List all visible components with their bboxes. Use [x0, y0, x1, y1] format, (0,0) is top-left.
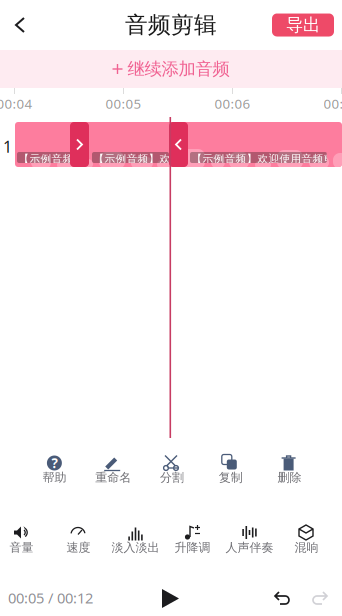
button[interactable]: 升降调 [164, 524, 221, 554]
staticText: 00:07 [323, 95, 342, 112]
button[interactable]: Redo [312, 591, 329, 606]
staticText: 00:04 [0, 95, 32, 112]
button[interactable]: Play [162, 589, 179, 608]
staticText: 【示例音频】欢迎使用音频剪辑 [18, 152, 172, 166]
staticText: 复制 [219, 470, 243, 485]
staticText: 音频剪辑 [125, 11, 217, 39]
staticText: 【示例音频】欢迎使用音频剪辑 [93, 152, 247, 166]
staticText: 人声伴奏 [225, 540, 273, 555]
button[interactable]: Back [0, 3, 40, 47]
staticText: 升降调 [174, 540, 210, 555]
button[interactable]: 导出 [272, 13, 334, 36]
staticText: 分割 [160, 470, 184, 485]
button[interactable]: ? [25, 455, 84, 484]
button[interactable]: 重命名 [84, 455, 143, 484]
staticText: 删除 [278, 470, 302, 485]
staticText: 帮助 [42, 470, 66, 485]
button[interactable]: Trim end [169, 122, 188, 167]
button[interactable]: 淡入淡出 [107, 524, 164, 554]
staticText: 00:05 [105, 95, 141, 112]
staticText: 音量 [9, 540, 33, 555]
staticText: 00:05 / 00:12 [8, 588, 93, 607]
staticText: 继续添加音频 [127, 58, 229, 80]
button[interactable]: 复制 [201, 455, 260, 484]
button[interactable]: 速度 [50, 524, 107, 554]
button[interactable]: 音量 [0, 524, 50, 554]
staticText: 00:06 [214, 95, 250, 112]
button[interactable]: 人声伴奏 [221, 524, 278, 554]
staticText: 淡入淡出 [111, 540, 159, 555]
button[interactable]: Trim start [70, 122, 89, 167]
staticText: 重命名 [95, 470, 131, 485]
button[interactable]: 删除 [260, 455, 319, 484]
button[interactable]: 混响 [278, 524, 335, 554]
staticText: ? [51, 454, 57, 472]
staticText: 1 [3, 136, 12, 157]
staticText: 导出 [286, 14, 320, 36]
button[interactable]: 分割 [143, 455, 201, 484]
button[interactable]: 继续添加音频 [0, 50, 342, 88]
button[interactable]: Undo [274, 591, 291, 606]
staticText: 混响 [294, 540, 318, 555]
staticText: 速度 [66, 540, 90, 555]
staticText: 【示例音频】欢迎使用音频剪辑 [191, 152, 342, 166]
